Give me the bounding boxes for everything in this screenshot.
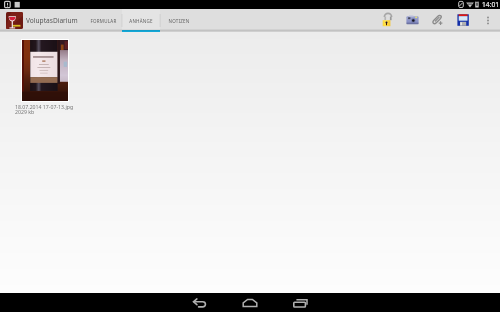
button[interactable]: App logo: [6, 12, 23, 29]
button[interactable]: ANHÄNGE: [122, 9, 160, 32]
button[interactable]: NOTIZEN: [160, 9, 198, 32]
staticText: 14:01: [482, 0, 500, 9]
button[interactable]: Back: [180, 293, 220, 312]
staticText: NOTIZEN: [168, 18, 190, 24]
button[interactable]: Lock: [378, 10, 398, 30]
button[interactable]: 18.07.2014 17-07-13.jpg 2029 kb: [15, 39, 74, 116]
button[interactable]: More options: [478, 10, 498, 30]
button[interactable]: FORMULAR: [84, 9, 122, 32]
staticText: VoluptasDiarium: [26, 16, 78, 25]
button[interactable]: Take photo: [403, 10, 423, 30]
staticText: ANHÄNGE: [129, 18, 153, 24]
button[interactable]: Save: [453, 10, 473, 30]
button[interactable]: Add attachment: [428, 10, 448, 30]
button[interactable]: Recent apps: [280, 293, 320, 312]
staticText: 18.07.2014 17-07-13.jpg 2029 kb: [15, 103, 74, 116]
button[interactable]: Home: [230, 293, 270, 312]
staticText: FORMULAR: [90, 18, 117, 24]
